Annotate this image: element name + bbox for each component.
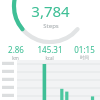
staticText: kcal xyxy=(45,55,54,60)
staticText: 3,784 xyxy=(31,1,70,21)
button[interactable]: 3,784 xyxy=(0,0,100,42)
button[interactable]: 145.31 xyxy=(31,44,68,60)
staticText: km xyxy=(12,55,19,60)
button[interactable]: 2.86 xyxy=(0,44,31,60)
staticText: 2.86 xyxy=(8,44,24,55)
staticText: 01:15 xyxy=(74,44,95,55)
button[interactable] xyxy=(0,60,100,100)
staticText: 时间 xyxy=(80,55,89,60)
staticText: Steps xyxy=(43,22,59,30)
button[interactable]: 01:15 xyxy=(68,44,100,60)
staticText: 145.31 xyxy=(37,44,63,55)
